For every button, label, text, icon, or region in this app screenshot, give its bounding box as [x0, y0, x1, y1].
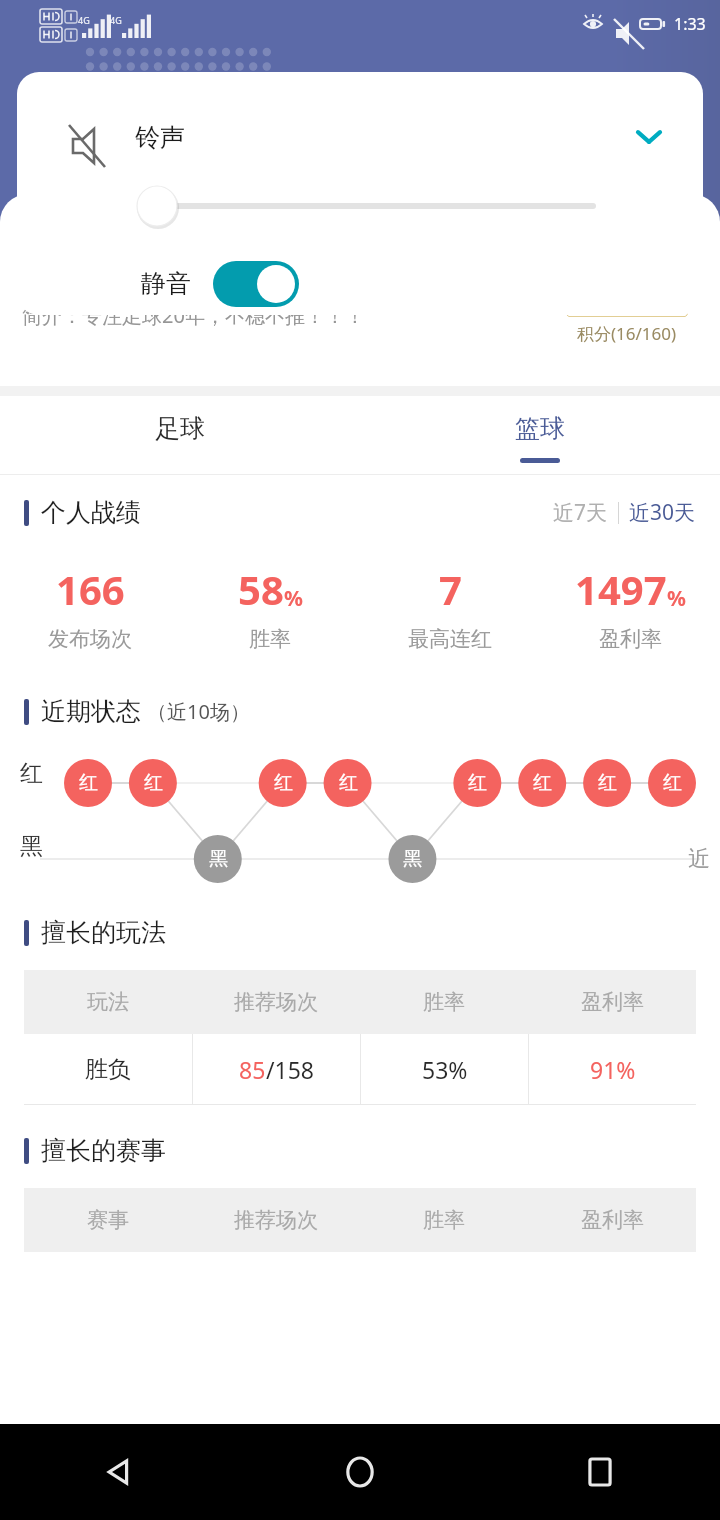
staticText: 近7天 [553, 498, 608, 527]
staticText: 红 [533, 771, 552, 795]
button[interactable]: 黑 [196, 837, 240, 881]
button[interactable]: Mute toggle, on [213, 261, 299, 307]
button[interactable]: Collapse [621, 109, 677, 165]
staticText: 推荐场次 [234, 989, 318, 1015]
staticText: 7 [439, 562, 462, 616]
button[interactable]: Recents [480, 1424, 720, 1520]
staticText: 擅长的玩法 [41, 917, 166, 948]
button[interactable]: 红 [455, 761, 499, 805]
staticText: % [284, 584, 303, 613]
staticText: （近10场） [147, 698, 250, 725]
staticText: 推荐场次 [234, 1207, 318, 1233]
staticText: 粉丝 124 发布 4312 [22, 261, 219, 288]
staticText: 红 [274, 771, 293, 795]
staticText: 赛事 [87, 1207, 129, 1233]
staticText: 黑 [209, 847, 228, 871]
button[interactable]: 红 [261, 761, 305, 805]
button[interactable]: 积分(16/160) [562, 196, 702, 345]
staticText: 红 [144, 771, 163, 795]
staticText: 胜率 [423, 989, 465, 1015]
staticText: 足球 [155, 413, 205, 444]
button[interactable]: 足球 [0, 396, 360, 474]
button[interactable] [17, 182, 703, 230]
staticText: 红 [20, 759, 43, 788]
staticText: 玩法 [87, 989, 129, 1015]
staticText: 静音 [141, 268, 191, 299]
staticText: 发布场次 [48, 626, 132, 652]
staticText: 胜率 [249, 626, 291, 652]
button[interactable]: 黑 [390, 837, 434, 881]
staticText: 4G [110, 14, 122, 26]
staticText: 盈利率 [581, 1207, 644, 1233]
staticText: 铃声 [135, 122, 185, 153]
staticText: 166 [56, 562, 125, 616]
staticText: 擅长的赛事 [41, 1135, 166, 1166]
staticText: 近30天 [629, 498, 696, 527]
button[interactable]: 红 [585, 761, 629, 805]
button[interactable]: Back [0, 1424, 240, 1520]
staticText: 篮球 [515, 413, 565, 444]
button[interactable]: 红 [650, 761, 694, 805]
staticText: 黑 [403, 847, 422, 871]
staticText: 91% [590, 1054, 636, 1085]
button[interactable]: Ringtone muted [63, 115, 107, 159]
staticText: 红 [598, 771, 617, 795]
staticText: 积分(16/160) [577, 322, 677, 345]
button[interactable]: Home [240, 1424, 480, 1520]
staticText: 53% [422, 1054, 468, 1085]
staticText: 红 [79, 771, 98, 795]
staticText: 近 [688, 845, 710, 873]
button[interactable]: 近30天 [629, 498, 696, 527]
button[interactable]: 红 [326, 761, 370, 805]
staticText: 最高连红 [408, 626, 492, 652]
button[interactable]: 红 [131, 761, 175, 805]
staticText: 近期状态 [41, 696, 141, 727]
staticText: 1:33 [674, 13, 706, 35]
staticText: 58 [238, 562, 284, 616]
staticText: 盈利率 [581, 989, 644, 1015]
staticText: 红 [339, 771, 358, 795]
staticText: 85 [239, 1054, 266, 1085]
staticText: 红 [663, 771, 682, 795]
staticText: 简介：专注足球20年，不稳不推！！！ [22, 302, 365, 329]
staticText: 红 [468, 771, 487, 795]
staticText: 胜负 [85, 1055, 131, 1084]
button[interactable]: 红 [66, 761, 110, 805]
staticText: 个人战绩 [41, 497, 141, 528]
staticText: 1497 [575, 562, 667, 616]
staticText: % [667, 584, 686, 613]
staticText: 盈利率 [599, 626, 662, 652]
staticText: 4G [78, 14, 90, 26]
staticText: 胜率 [423, 1207, 465, 1233]
staticText: 黑 [20, 832, 43, 861]
button[interactable]: 篮球 [360, 396, 720, 474]
button[interactable]: 近7天 [553, 498, 608, 527]
staticText: /158 [266, 1054, 315, 1085]
button[interactable]: 红 [520, 761, 564, 805]
